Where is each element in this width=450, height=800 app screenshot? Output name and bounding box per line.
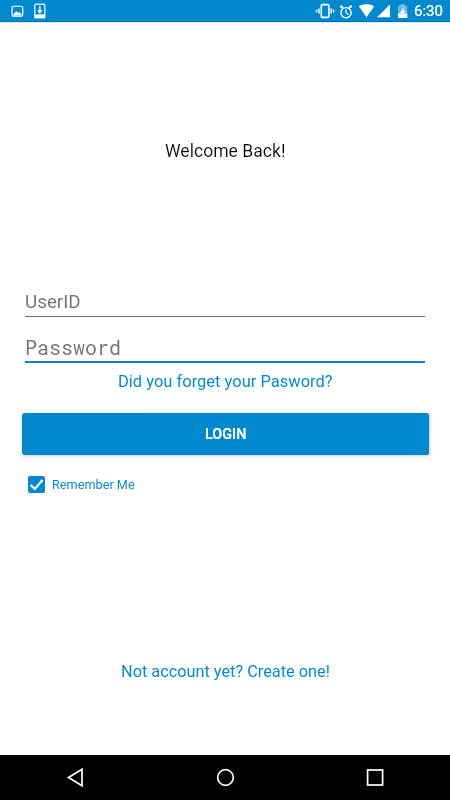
staticText: Password [25,334,122,360]
staticText: Did you forget your Pasword? [118,372,333,391]
staticText: 6:30 [414,2,443,20]
button[interactable]: Recent apps [345,755,405,800]
staticText: Remember Me [52,477,135,492]
button[interactable]: Home [195,755,255,800]
button[interactable]: Password [25,332,425,363]
staticText: Welcome Back! [165,141,286,162]
staticText: UserID [25,291,81,313]
staticText: LOGIN [205,426,247,443]
button[interactable]: Did you forget your Pasword? [118,370,333,392]
button[interactable]: Remember Me [28,476,135,493]
button[interactable]: Not account yet? Create one! [121,660,330,682]
button[interactable]: UserID [25,288,425,317]
staticText: Not account yet? Create one! [121,662,330,681]
button[interactable]: Back [45,755,105,800]
button[interactable]: LOGIN [22,413,429,455]
